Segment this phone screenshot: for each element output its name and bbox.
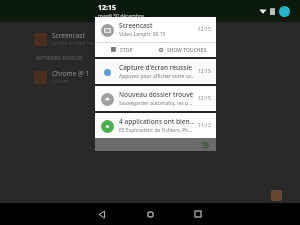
button[interactable]: STOP xyxy=(95,43,149,57)
staticText: mardi 30 décembre xyxy=(98,13,144,20)
staticText: 11:13 xyxy=(198,122,211,129)
button[interactable]: Back xyxy=(87,203,117,225)
button[interactable]: Screencast xyxy=(95,17,216,57)
staticText: Nouveau dossier trouvé xyxy=(119,90,194,99)
button[interactable]: Home xyxy=(135,203,165,225)
staticText: 4 applications ont bien été mises à jour xyxy=(119,117,195,126)
button[interactable]: Clear all notifications xyxy=(95,138,216,151)
button[interactable]: 4 applications ont bien été mises à jour xyxy=(95,113,216,138)
staticText: SHOW TOUCHES xyxy=(167,47,207,54)
staticText: STOP xyxy=(120,47,133,54)
button[interactable]: Nouveau dossier trouvé xyxy=(95,86,216,111)
staticText: Screencast xyxy=(119,21,153,30)
button[interactable]: SHOW TOUCHES xyxy=(149,43,216,57)
staticText: Chrome @ 1 xyxy=(52,69,90,78)
staticText: Appuyez pour afficher votre capture d'éc… xyxy=(119,73,195,80)
staticText: NETWORK DEVICES xyxy=(36,55,83,62)
staticText: 12:15 xyxy=(198,95,211,102)
button[interactable]: Capture d'écran réussie xyxy=(95,59,216,84)
staticText: Capture d'écran réussie xyxy=(119,63,192,72)
staticText: 12:15 xyxy=(98,3,116,13)
staticText: ES Explorateur de Fichiers, PhotoStation… xyxy=(119,127,195,134)
button[interactable]: Recent apps xyxy=(183,203,213,225)
staticText: Sauvegarder automatiq. les photos dans S… xyxy=(119,100,195,107)
staticText: 12:15 xyxy=(198,26,211,33)
staticText: 12:15 xyxy=(198,68,211,75)
staticText: AllCast xyxy=(52,78,68,85)
staticText: Video Length: 00:15 xyxy=(119,31,166,38)
staticText: Create a video recording xyxy=(52,40,110,47)
staticText: Screencast xyxy=(52,31,85,40)
